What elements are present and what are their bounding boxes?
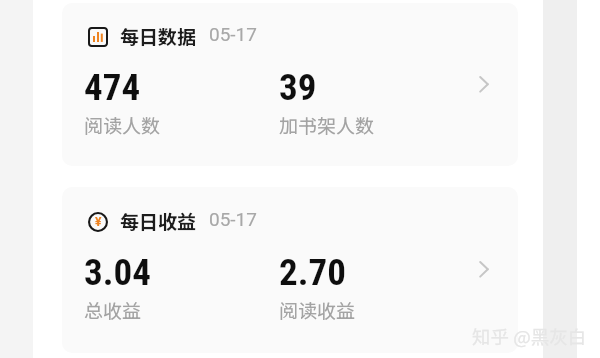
button[interactable] xyxy=(62,187,518,353)
staticText: 05-17 xyxy=(209,23,257,45)
staticText: 05-17 xyxy=(209,208,257,230)
staticText: 总收益 xyxy=(84,296,142,324)
staticText: ¥ xyxy=(95,215,102,229)
staticText: 加书架人数 xyxy=(279,111,375,139)
button[interactable] xyxy=(62,3,518,166)
staticText: 474 xyxy=(84,66,141,109)
staticText: 知乎 @黑灰白 xyxy=(472,323,587,350)
staticText: 每日数据 xyxy=(120,22,197,50)
staticText: 3.04 xyxy=(84,251,151,294)
other: Daily earnings xyxy=(88,212,108,232)
staticText: 39 xyxy=(279,66,317,109)
staticText: 每日收益 xyxy=(120,207,197,235)
button[interactable]: More details xyxy=(466,258,494,286)
staticText: 阅读人数 xyxy=(84,111,161,139)
button[interactable]: More details xyxy=(466,73,494,101)
staticText: 阅读收益 xyxy=(279,296,356,324)
staticText: 2.70 xyxy=(279,251,346,294)
other: Daily data xyxy=(88,27,108,47)
